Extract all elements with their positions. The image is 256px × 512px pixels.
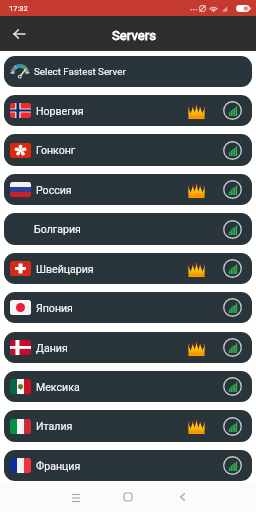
button[interactable]: Select Fastest Server xyxy=(4,56,252,87)
staticText: Гонконг xyxy=(36,144,76,156)
button[interactable]: Back xyxy=(4,19,33,48)
staticText: Норвегия xyxy=(36,105,84,117)
button[interactable]: Норвегия xyxy=(4,95,252,126)
button[interactable]: Болгария xyxy=(4,213,252,245)
staticText: Франция xyxy=(36,460,81,472)
staticText: Швейцария xyxy=(36,263,94,275)
button[interactable]: Дания xyxy=(4,332,252,363)
staticText: Италия xyxy=(36,420,73,432)
staticText: Болгария xyxy=(34,223,81,235)
button[interactable]: Мексика xyxy=(4,371,252,402)
button[interactable]: Франция xyxy=(4,450,252,481)
button[interactable]: Япония xyxy=(4,292,252,323)
button[interactable]: Home xyxy=(113,482,143,512)
staticText: Servers xyxy=(112,28,156,43)
staticText: Япония xyxy=(36,302,73,314)
button[interactable]: Россия xyxy=(4,174,252,205)
button[interactable]: Recent apps xyxy=(61,482,91,512)
button[interactable]: Гонконг xyxy=(4,134,252,166)
button[interactable]: Швейцария xyxy=(4,253,252,284)
staticText: Мексика xyxy=(36,381,80,393)
button[interactable]: Back xyxy=(167,482,197,512)
staticText: 17:32 xyxy=(9,4,28,13)
button[interactable]: Италия xyxy=(4,410,252,442)
staticText: Дания xyxy=(36,342,68,354)
staticText: Россия xyxy=(36,184,72,196)
staticText: Select Fastest Server xyxy=(34,66,126,77)
